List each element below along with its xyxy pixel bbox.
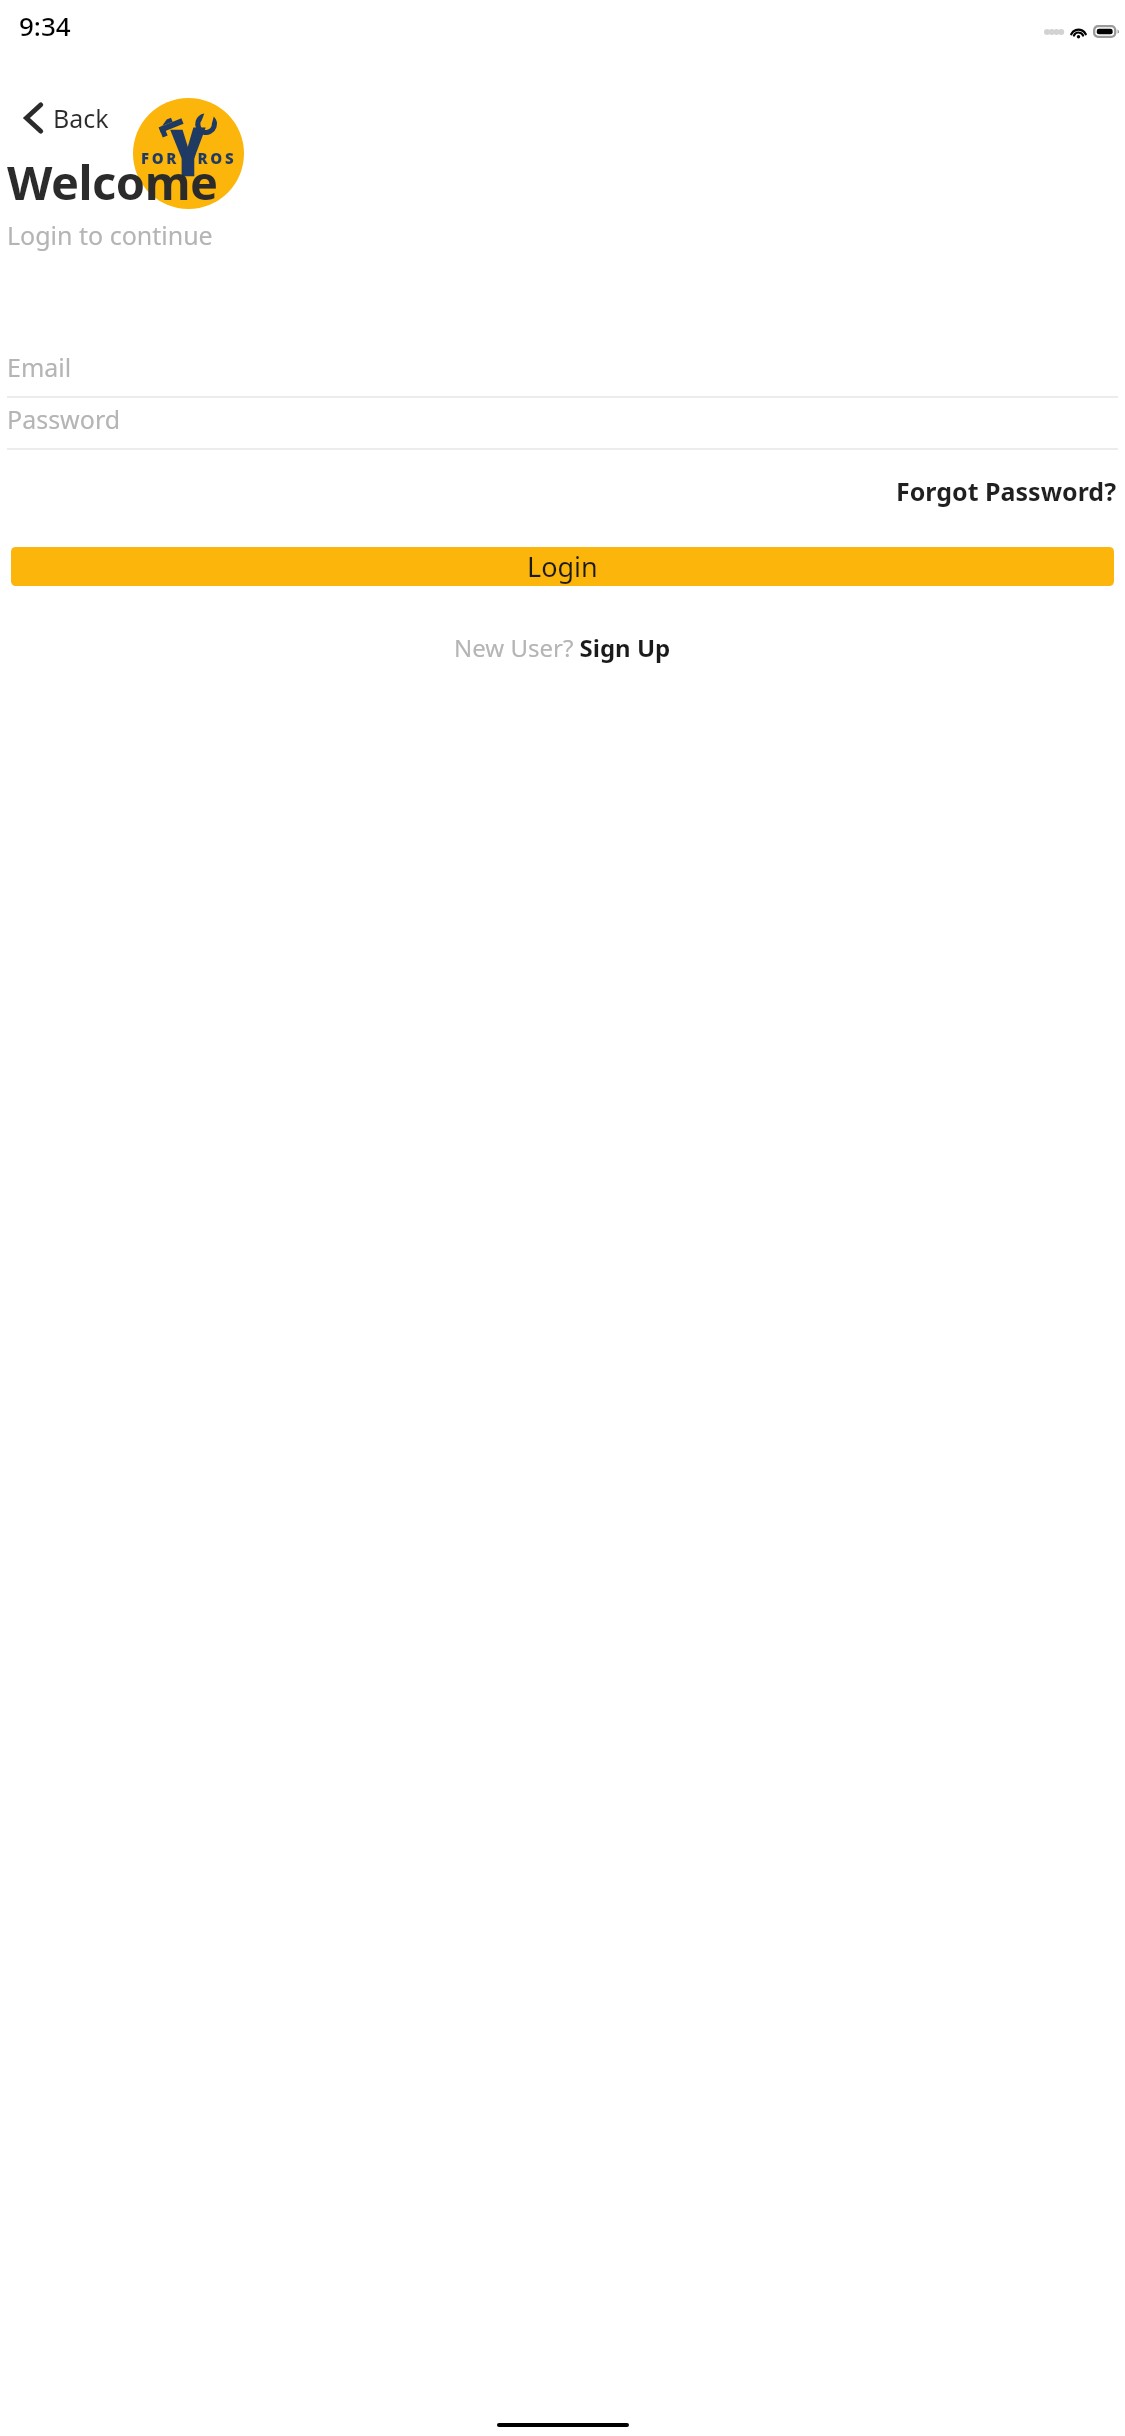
button[interactable]: Back — [18, 95, 115, 141]
staticText: FOR PROS — [141, 148, 237, 168]
button[interactable]: Email — [7, 348, 1118, 398]
staticText: New User? Sign Up — [454, 631, 671, 664]
button[interactable]: Login — [11, 547, 1114, 586]
staticText: Login to continue — [7, 218, 213, 252]
staticText: Email — [7, 350, 72, 384]
button[interactable]: New User? Sign Up — [446, 625, 679, 670]
staticText: Forgot Password? — [896, 474, 1117, 508]
staticText: 9:34 — [19, 8, 71, 43]
staticText: Password — [7, 402, 121, 436]
button[interactable]: Forgot Password? — [892, 468, 1121, 514]
staticText: Back — [53, 101, 109, 135]
button[interactable]: Password — [7, 400, 1118, 450]
staticText: Login — [527, 548, 598, 585]
staticText: Welcome — [7, 150, 218, 214]
